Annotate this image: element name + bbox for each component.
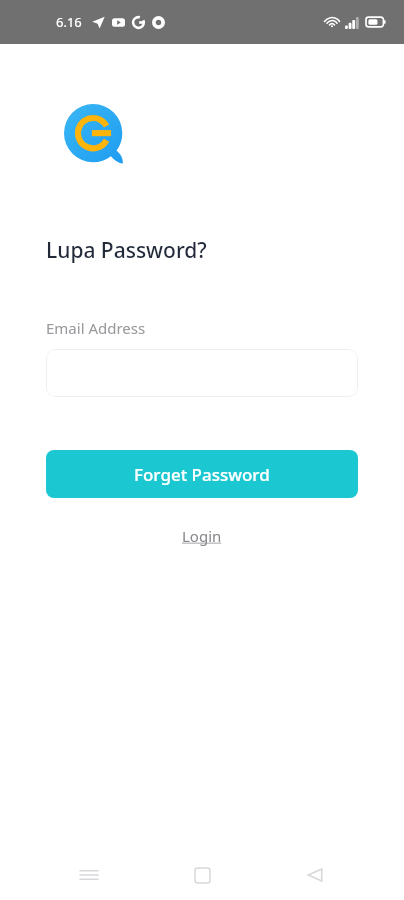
- button[interactable]: Back: [291, 851, 339, 899]
- staticText: 6.16: [56, 13, 82, 31]
- staticText: Login: [182, 526, 222, 546]
- staticText: Email Address: [46, 318, 146, 338]
- button[interactable]: Home: [178, 851, 226, 899]
- staticText: Forget Password: [134, 463, 270, 486]
- button[interactable]: Forget Password: [46, 450, 358, 498]
- button[interactable]: Login: [172, 522, 232, 550]
- staticText: Lupa Password?: [46, 236, 207, 265]
- button[interactable]: [46, 349, 358, 397]
- button[interactable]: Recent apps: [65, 851, 113, 899]
